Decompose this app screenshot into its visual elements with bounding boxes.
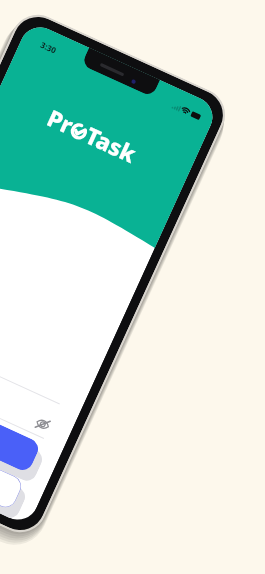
button[interactable]: Sign in xyxy=(0,375,42,473)
other: Toggle password visibility xyxy=(33,415,52,433)
staticText: 3:30 xyxy=(39,39,58,55)
staticText: Task xyxy=(81,119,142,169)
button[interactable]: Create account xyxy=(0,413,25,511)
staticText: Pr xyxy=(43,102,78,140)
